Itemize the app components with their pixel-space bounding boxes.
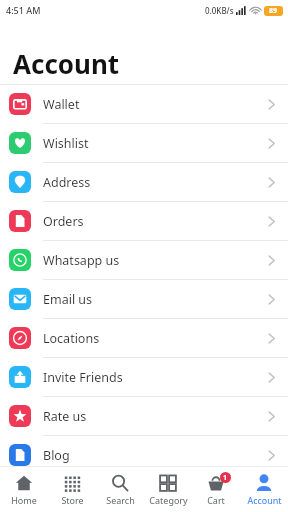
button[interactable]: Rate us <box>0 397 288 435</box>
staticText: Invite Friends <box>43 369 123 386</box>
staticText: 89 <box>269 6 278 16</box>
button[interactable]: Locations <box>0 319 288 357</box>
button[interactable]: Orders <box>0 202 288 240</box>
staticText: Store <box>61 494 84 506</box>
staticText: Category <box>149 494 188 506</box>
staticText: Rate us <box>43 408 87 425</box>
staticText: Home <box>11 494 37 506</box>
button[interactable]: Store <box>48 467 96 512</box>
button[interactable]: Address <box>0 163 288 201</box>
button[interactable]: Home <box>0 467 48 512</box>
staticText: Account <box>13 46 120 81</box>
staticText: Wishlist <box>43 135 89 152</box>
button[interactable]: Category <box>144 467 192 512</box>
staticText: Blog <box>43 447 70 464</box>
button[interactable]: Search <box>96 467 144 512</box>
staticText: Whatsapp us <box>43 252 120 269</box>
staticText: Search <box>106 494 135 506</box>
staticText: 1 <box>223 473 228 483</box>
button[interactable]: Blog <box>0 436 288 466</box>
staticText: 4:51 AM <box>6 4 41 16</box>
button[interactable]: Wallet <box>0 85 288 123</box>
staticText: Locations <box>43 330 100 347</box>
staticText: 0.0KB/s <box>205 5 234 16</box>
button[interactable]: Email us <box>0 280 288 318</box>
button[interactable]: 1 <box>192 467 240 512</box>
button[interactable]: Invite Friends <box>0 358 288 396</box>
staticText: Cart <box>207 494 225 506</box>
button[interactable]: Account <box>240 467 288 512</box>
staticText: Wallet <box>43 96 80 113</box>
staticText: Orders <box>43 213 84 230</box>
staticText: Account <box>247 494 282 506</box>
button[interactable]: Whatsapp us <box>0 241 288 279</box>
button[interactable]: Wishlist <box>0 124 288 162</box>
staticText: Address <box>43 174 91 191</box>
staticText: Email us <box>43 291 93 308</box>
